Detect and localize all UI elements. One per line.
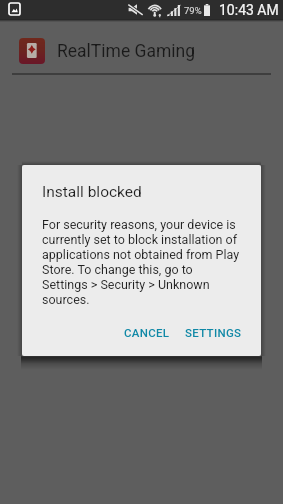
staticText: RealTime Gaming [57, 41, 196, 62]
staticText: SETTINGS [185, 326, 242, 339]
button[interactable]: RealTime Gaming app icon [19, 38, 196, 64]
other: Wi-Fi connected [148, 4, 162, 17]
button[interactable]: CANCEL [117, 320, 177, 345]
other: Screenshot captured [9, 3, 20, 15]
other: Sound muted [128, 4, 143, 15]
staticText: CANCEL [124, 326, 170, 339]
other: RealTime Gaming app icon [19, 38, 45, 64]
staticText: 79% [184, 5, 202, 16]
staticText: 10:43 AM [219, 2, 279, 18]
other: Mobile signal [167, 5, 181, 16]
button[interactable]: SETTINGS [178, 320, 249, 345]
staticText: For security reasons, your device is cur… [42, 217, 241, 307]
staticText: Install blocked [42, 183, 142, 201]
other: Battery 79 percent [204, 4, 210, 16]
